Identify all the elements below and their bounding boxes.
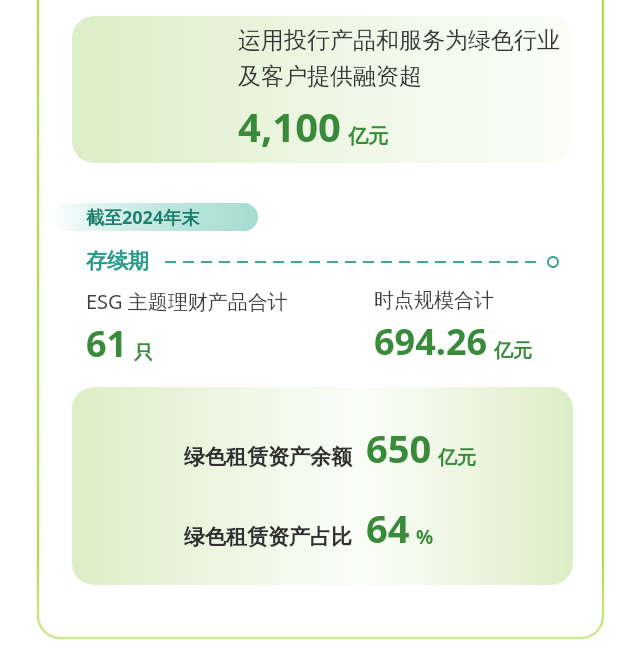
staticText: % <box>416 524 434 550</box>
button[interactable]: 运用投行产品和服务为绿色行业 <box>72 16 573 163</box>
staticText: 亿元 <box>438 446 476 470</box>
staticText: 只 <box>134 341 153 365</box>
staticText: 存续期 <box>86 248 149 274</box>
staticText: 亿元 <box>494 339 532 363</box>
staticText: 及客户提供融资超 <box>238 62 422 91</box>
staticText: 61 <box>86 319 128 368</box>
staticText: 64 <box>366 502 410 554</box>
staticText: 截至2024年末 <box>86 205 200 230</box>
staticText: 4,100 <box>238 99 341 153</box>
staticText: 亿元 <box>348 124 388 149</box>
staticText: 650 <box>366 422 432 474</box>
button[interactable]: 绿色租赁资产余额 <box>72 387 573 585</box>
staticText: 绿色租赁资产占比 <box>184 524 352 550</box>
staticText: 694.26 <box>374 317 488 366</box>
staticText: 时点规模合计 <box>374 288 494 313</box>
staticText: 运用投行产品和服务为绿色行业 <box>238 26 560 55</box>
staticText: ESG 主题理财产品合计 <box>86 288 288 315</box>
staticText: 绿色租赁资产余额 <box>184 444 352 470</box>
button[interactable]: 截至2024年末 <box>52 203 258 231</box>
